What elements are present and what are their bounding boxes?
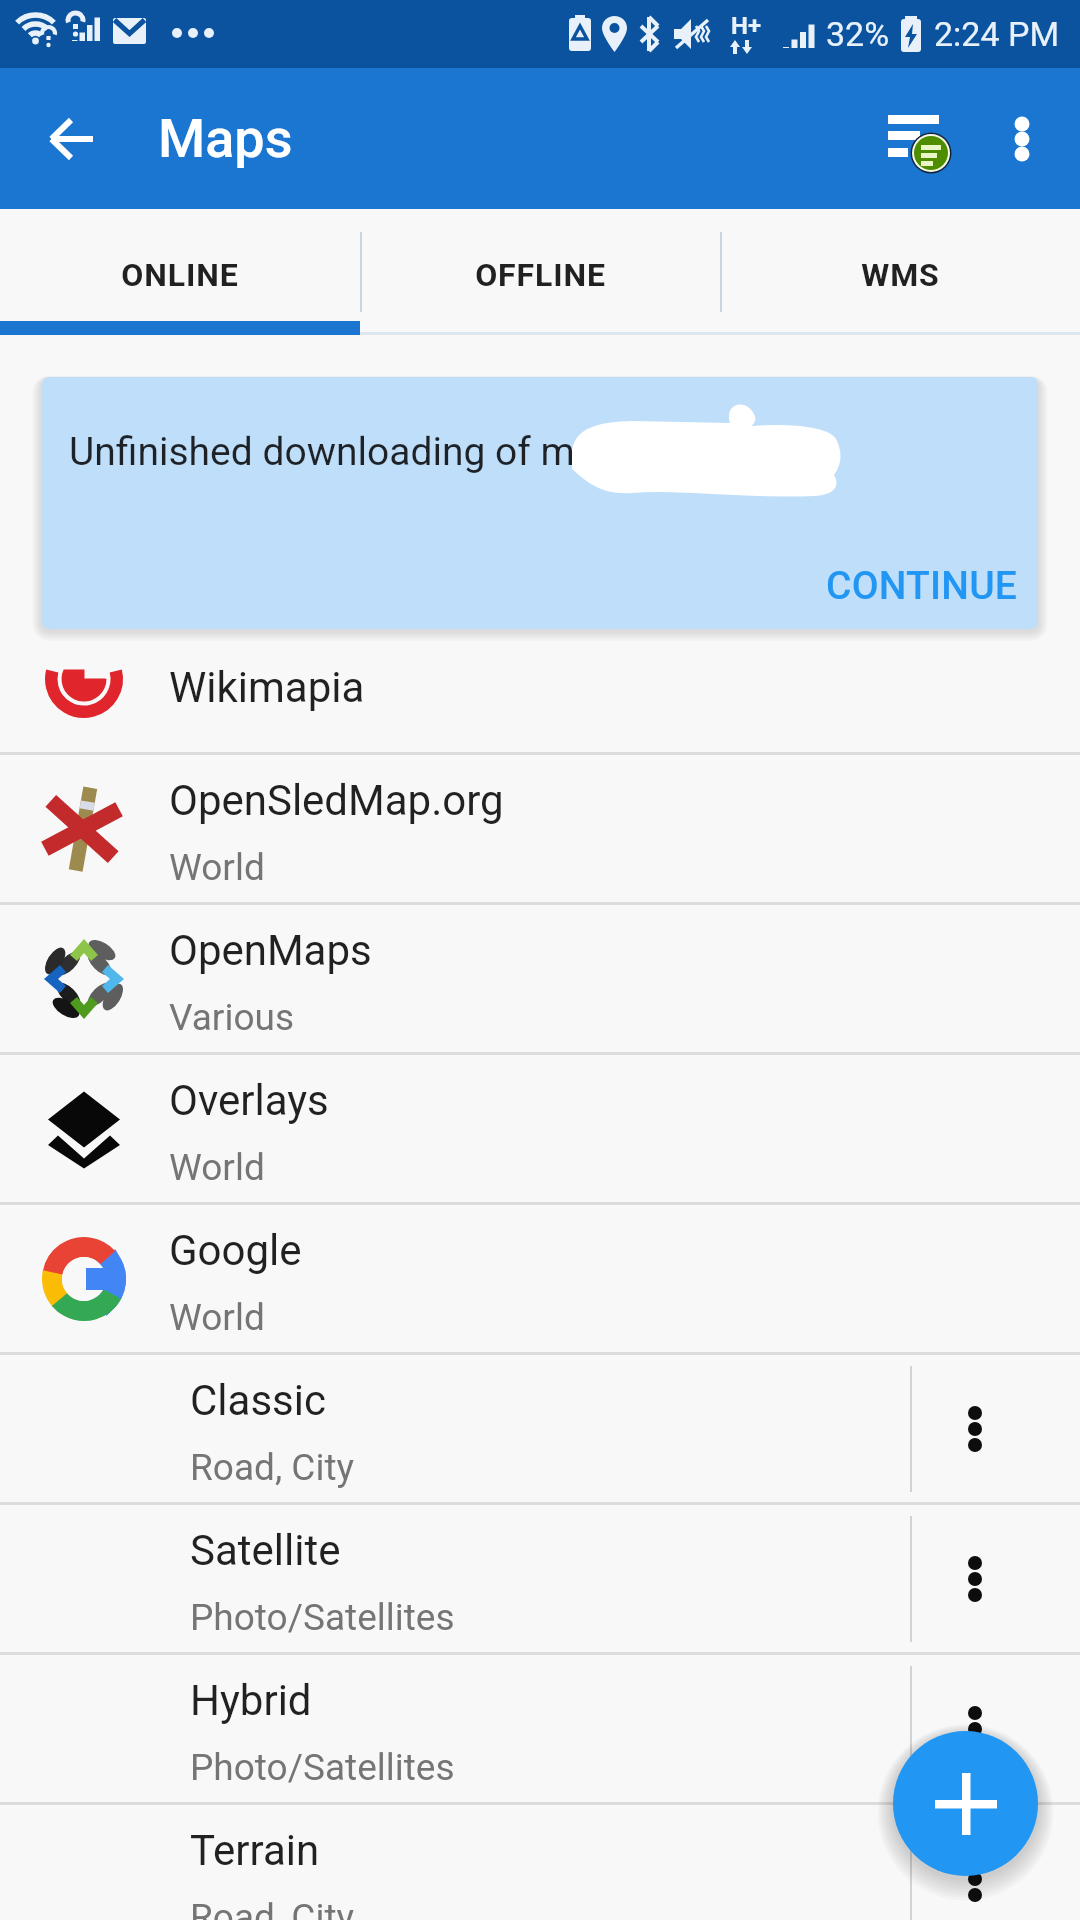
staticText: Photo/Satellites (190, 1596, 455, 1639)
staticText: ONLINE (121, 256, 239, 294)
staticText: Road, City (190, 1896, 355, 1920)
staticText: World (169, 1146, 265, 1189)
staticText: OpenSledMap.org (169, 776, 504, 825)
staticText: Road, City (190, 1446, 355, 1489)
staticText: Hybrid (190, 1676, 312, 1725)
staticText: Overlays (169, 1076, 329, 1125)
button[interactable] (0, 1805, 1080, 1920)
button[interactable]: OpenSledMap.org (0, 755, 1080, 905)
staticText: World (169, 1296, 265, 1339)
staticText: CONTINUE (826, 563, 1018, 609)
button[interactable]: OpenMaps (0, 905, 1080, 1055)
button[interactable]: Options (915, 1519, 1035, 1639)
staticText: Google (169, 1226, 302, 1275)
staticText: 2:24 PM (934, 14, 1060, 54)
button[interactable] (0, 1655, 1080, 1802)
staticText: Unfinished downloading of map (69, 429, 618, 475)
staticText: Classic (190, 1376, 326, 1425)
button[interactable]: CONTINUE (818, 553, 1026, 619)
staticText: Photo/Satellites (190, 1746, 455, 1789)
button[interactable]: Options (915, 1819, 1035, 1920)
staticText: Various (169, 996, 294, 1039)
staticText: World (169, 846, 265, 889)
staticText: 32% (826, 14, 890, 54)
staticText: Satellite (190, 1526, 341, 1575)
button[interactable]: Google (0, 1205, 1080, 1355)
staticText: Maps (158, 107, 293, 170)
staticText: Wikimapia (169, 663, 365, 712)
button[interactable]: ONLINE (0, 209, 360, 335)
button[interactable] (0, 1355, 1080, 1502)
button[interactable]: Sort (870, 87, 974, 191)
staticText: Terrain (190, 1826, 320, 1875)
button[interactable]: Back (24, 91, 120, 187)
button[interactable]: Add (893, 1731, 1038, 1876)
button[interactable]: Overlays (0, 1055, 1080, 1205)
staticText: OpenMaps (169, 926, 372, 975)
button[interactable]: WMS (720, 209, 1080, 335)
staticText: WMS (861, 256, 940, 294)
staticText: OFFLINE (475, 256, 606, 294)
button[interactable]: OFFLINE (360, 209, 720, 335)
button[interactable]: Wikimapia (0, 605, 1080, 755)
button[interactable]: More options (974, 91, 1070, 187)
button[interactable] (0, 1505, 1080, 1652)
staticText: H+ (731, 12, 762, 40)
button[interactable]: Options (915, 1369, 1035, 1489)
button[interactable]: Options (915, 1669, 1035, 1789)
